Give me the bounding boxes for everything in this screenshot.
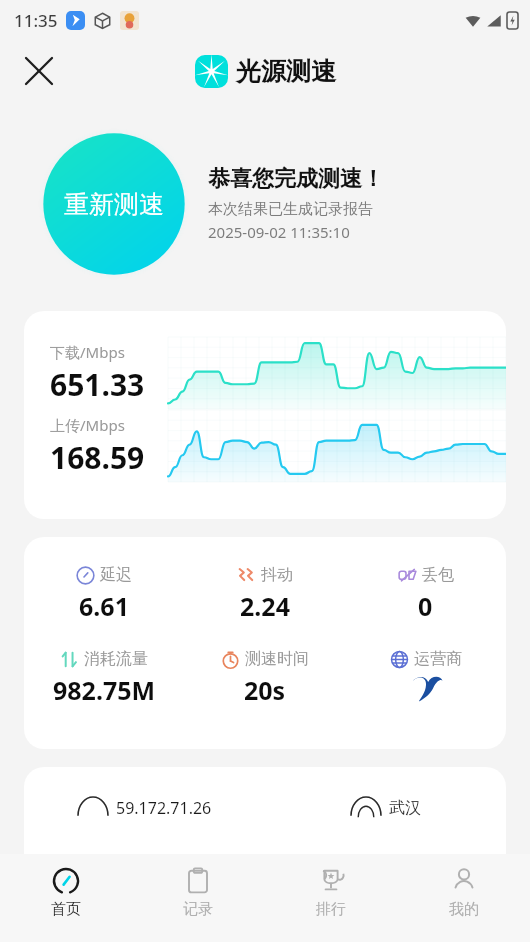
staticText: 20s	[244, 673, 286, 707]
button[interactable]: 测速时间	[184, 649, 345, 707]
staticText: 2.24	[240, 589, 290, 623]
staticText: 记录	[183, 900, 213, 919]
staticText: 光源测速	[236, 56, 336, 87]
staticText: 测速时间	[245, 649, 309, 669]
button[interactable]: 排行	[264, 854, 397, 942]
staticText: 重新测速	[64, 189, 164, 220]
staticText: 59.172.71.26	[116, 797, 212, 819]
staticText: 0	[418, 589, 433, 623]
button[interactable]: 抖动	[184, 565, 345, 623]
button[interactable]: 我的	[397, 854, 530, 942]
button[interactable]: 重新测速	[38, 128, 190, 280]
staticText: 消耗流量	[84, 649, 148, 669]
button[interactable]: 延迟	[24, 565, 184, 623]
button[interactable]: Close	[14, 46, 64, 96]
staticText: 丢包	[422, 565, 454, 585]
button[interactable]: 下载/Mbps	[24, 311, 506, 519]
staticText: 首页	[51, 900, 81, 919]
staticText: 下载/Mbps	[50, 342, 125, 362]
staticText: 我的	[449, 900, 479, 919]
button[interactable]: 记录	[132, 854, 264, 942]
button[interactable]: 首页	[0, 854, 132, 942]
staticText: 651.33	[50, 364, 145, 405]
staticText: 上传/Mbps	[50, 415, 125, 435]
staticText: 11:35	[14, 9, 58, 32]
staticText: 恭喜您完成测速！	[208, 165, 384, 193]
staticText: 168.59	[50, 437, 145, 478]
staticText: 运营商	[414, 649, 462, 669]
staticText: 抖动	[261, 565, 293, 585]
staticText: 武汉	[389, 798, 421, 818]
staticText: 6.61	[79, 589, 129, 623]
staticText: 2025-09-02 11:35:10	[208, 222, 350, 242]
button[interactable]: 消耗流量	[24, 649, 184, 707]
staticText: 本次结果已生成记录报告	[208, 200, 373, 219]
staticText: 排行	[316, 900, 346, 919]
button[interactable]: 运营商	[345, 649, 506, 703]
button[interactable]: 丢包	[345, 565, 506, 623]
staticText: 982.75M	[53, 673, 156, 707]
staticText: 延迟	[100, 565, 132, 585]
